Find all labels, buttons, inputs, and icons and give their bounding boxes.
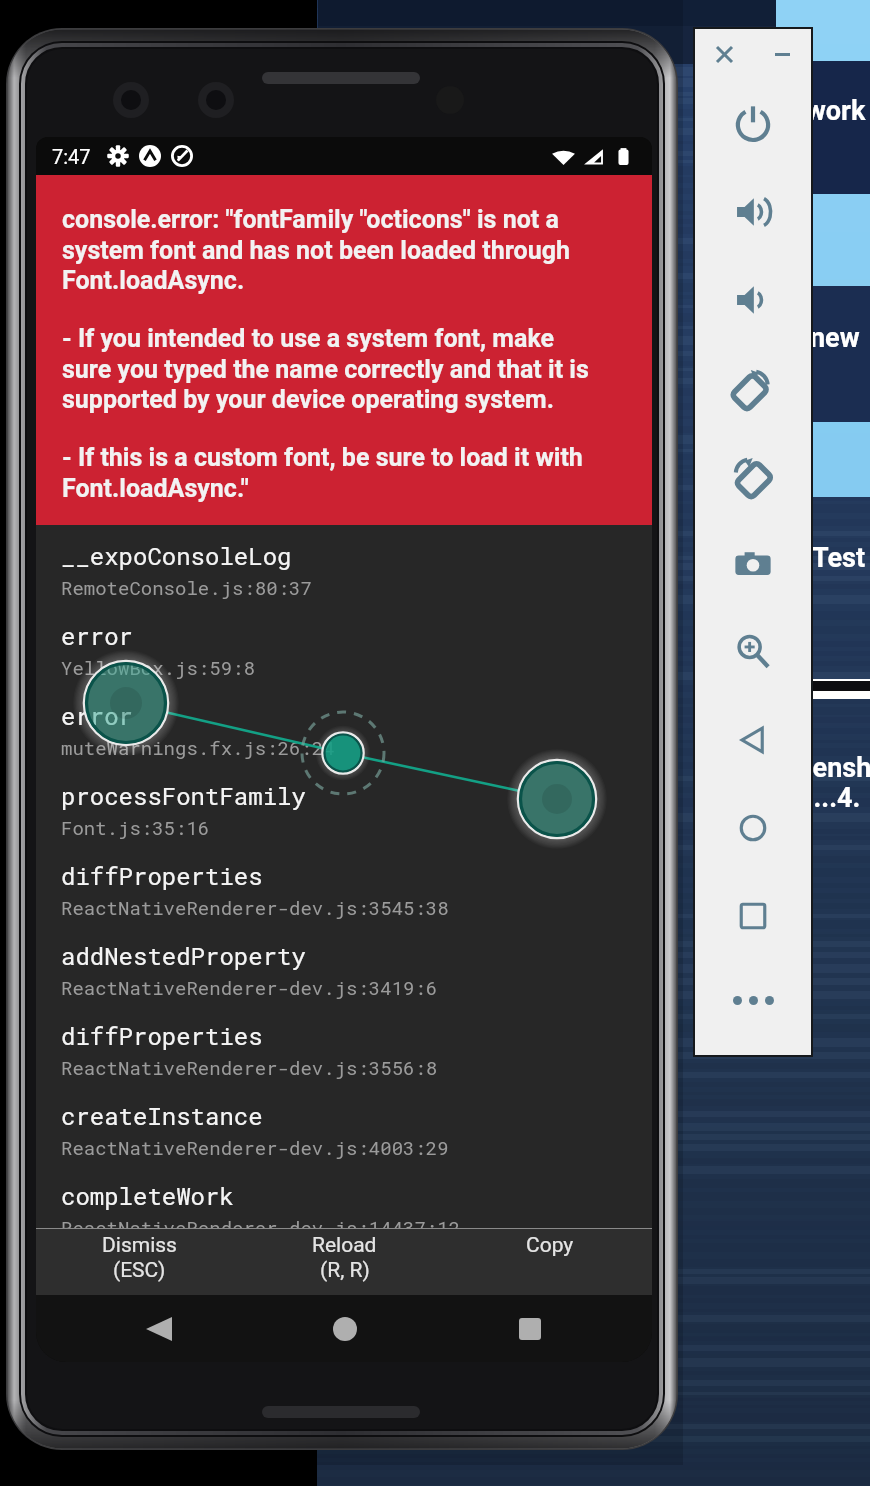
staticText: Copy [526,1233,574,1258]
button[interactable]: Minimize [753,29,811,80]
staticText: RemoteConsole.js:80:37 [61,575,312,600]
staticText: - If you intended to use a system font, … [62,324,589,414]
button[interactable]: Zoom [695,608,811,696]
staticText: error [61,700,134,732]
staticText: ReactNativeRenderer-dev.js:3556:8 [61,1055,438,1080]
staticText: ReactNativeRenderer-dev.js:4003:29 [61,1135,449,1160]
button[interactable]: Close [695,29,753,80]
staticText: YellowBox.js:59:8 [61,655,255,680]
staticText: Test [812,542,866,574]
staticText: 7:47 [52,145,91,168]
button[interactable]: error [61,700,652,780]
button[interactable]: Rotate left [695,344,811,432]
button[interactable]: Rotate right [695,432,811,520]
staticText: completeWork [61,1180,234,1212]
staticText: work [806,95,866,127]
staticText: ReactNativeRenderer-dev.js:3545:38 [61,895,449,920]
button[interactable]: Dismiss [36,1229,242,1295]
staticText: Reload [312,1233,377,1258]
button[interactable]: Reload [242,1229,447,1295]
button[interactable]: Back [695,696,811,784]
button[interactable]: diffProperties [61,860,652,940]
button[interactable]: createInstance [61,1100,652,1180]
staticText: Font.js:35:16 [61,815,210,840]
staticText: processFontFamily [61,780,306,812]
button[interactable]: Home [695,784,811,872]
staticText: - If this is a custom font, be sure to l… [62,443,583,503]
staticText: error [61,620,134,652]
staticText: ReactNativeRenderer-dev.js:3419:6 [61,975,438,1000]
button[interactable]: Home [252,1295,437,1362]
staticText: (ESC) [113,1258,166,1283]
staticText: diffProperties [61,1020,263,1052]
button[interactable]: addNestedProperty [61,940,652,1020]
staticText: muteWarnings.fx.js:26:24 [61,735,335,760]
button[interactable]: Overview [695,872,811,960]
staticText: (R, R) [320,1258,370,1283]
button[interactable]: Copy [447,1229,652,1295]
staticText: new [810,322,860,354]
button[interactable]: Back [66,1295,252,1362]
button[interactable]: Recent apps [437,1295,622,1362]
button[interactable]: __expoConsoleLog [61,540,652,620]
button[interactable]: completeWork [61,1180,652,1228]
staticText: __expoConsoleLog [61,540,292,572]
staticText: diffProperties [61,860,263,892]
button[interactable]: Volume down [695,256,811,344]
button[interactable]: diffProperties [61,1020,652,1100]
button[interactable]: processFontFamily [61,780,652,860]
staticText: eensh [798,752,870,784]
button[interactable]: Screenshot [695,520,811,608]
button[interactable]: error [61,620,652,700]
staticText: ReactNativeRenderer-dev.js:14437:12 [61,1215,461,1228]
staticText: Dismiss [102,1233,177,1258]
button[interactable]: More options [695,960,811,1040]
staticText: addNestedProperty [61,940,306,972]
staticText: console.error: "fontFamily "octicons" is… [62,205,570,295]
staticText: 1...4. [798,782,861,814]
staticText: createInstance [61,1100,263,1132]
button[interactable]: Power [695,80,811,168]
button[interactable]: Volume up [695,168,811,256]
